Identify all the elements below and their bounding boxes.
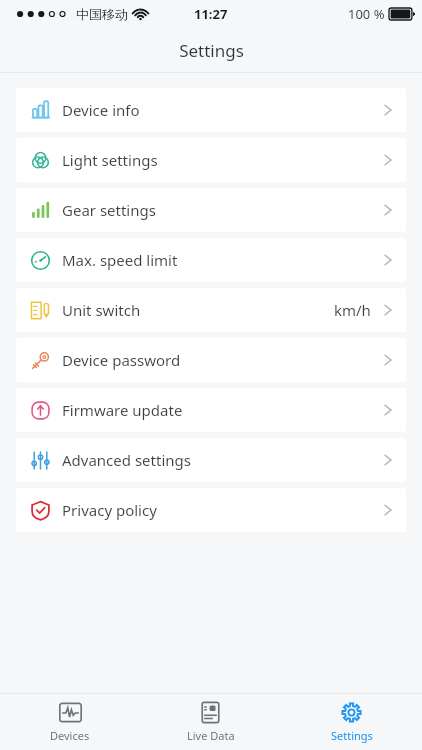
- button[interactable]: Privacy policy: [16, 488, 406, 532]
- staticText: Advanced settings: [62, 450, 191, 470]
- staticText: Settings: [179, 39, 244, 62]
- staticText: Privacy policy: [62, 500, 157, 520]
- staticText: Light settings: [62, 150, 158, 170]
- button[interactable]: Settings: [281, 694, 422, 750]
- button[interactable]: Firmware update: [16, 388, 406, 432]
- button[interactable]: Gear settings: [16, 188, 406, 232]
- staticText: Device info: [62, 100, 140, 120]
- button[interactable]: Device password: [16, 338, 406, 382]
- button[interactable]: Max. speed limit: [16, 238, 406, 282]
- button[interactable]: Light settings: [16, 138, 406, 182]
- staticText: 中国移动: [76, 6, 128, 22]
- staticText: 11:27: [194, 5, 228, 23]
- staticText: Live Data: [187, 728, 235, 743]
- staticText: km/h: [334, 300, 371, 320]
- button[interactable]: Devices: [0, 694, 140, 750]
- button[interactable]: Live Data: [140, 694, 281, 750]
- button[interactable]: Unit switch: [16, 288, 406, 332]
- staticText: Settings: [331, 728, 373, 743]
- staticText: Max. speed limit: [62, 250, 178, 270]
- staticText: 100 %: [348, 5, 385, 23]
- staticText: Device password: [62, 350, 181, 370]
- staticText: Gear settings: [62, 200, 156, 220]
- staticText: Firmware update: [62, 400, 183, 420]
- button[interactable]: Advanced settings: [16, 438, 406, 482]
- button[interactable]: Device info: [16, 88, 406, 132]
- staticText: Unit switch: [62, 300, 141, 320]
- staticText: Devices: [50, 728, 90, 743]
